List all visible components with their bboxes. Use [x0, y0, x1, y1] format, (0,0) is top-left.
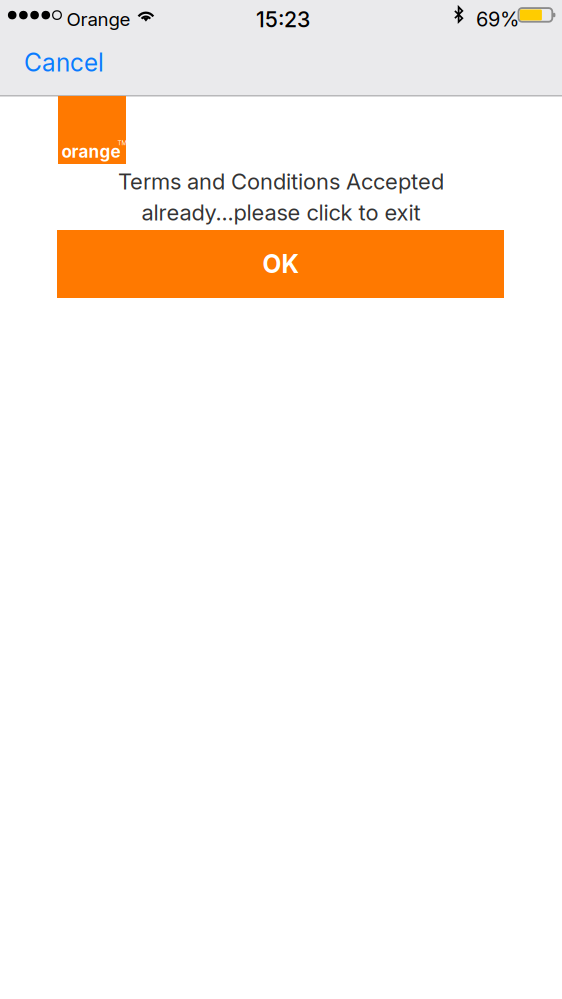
staticText: 15:23 — [256, 7, 310, 32]
staticText: OK — [262, 249, 298, 279]
staticText: TM — [117, 139, 127, 147]
staticText: Terms and Conditions Accepted — [118, 168, 444, 195]
staticText: Orange — [66, 8, 130, 30]
staticText: orange — [62, 141, 121, 162]
button[interactable]: OK — [57, 230, 504, 298]
staticText: 69% — [476, 7, 519, 31]
button[interactable]: Cancel — [0, 30, 128, 95]
staticText: already...please click to exit — [141, 199, 420, 226]
staticText: Cancel — [24, 48, 104, 77]
